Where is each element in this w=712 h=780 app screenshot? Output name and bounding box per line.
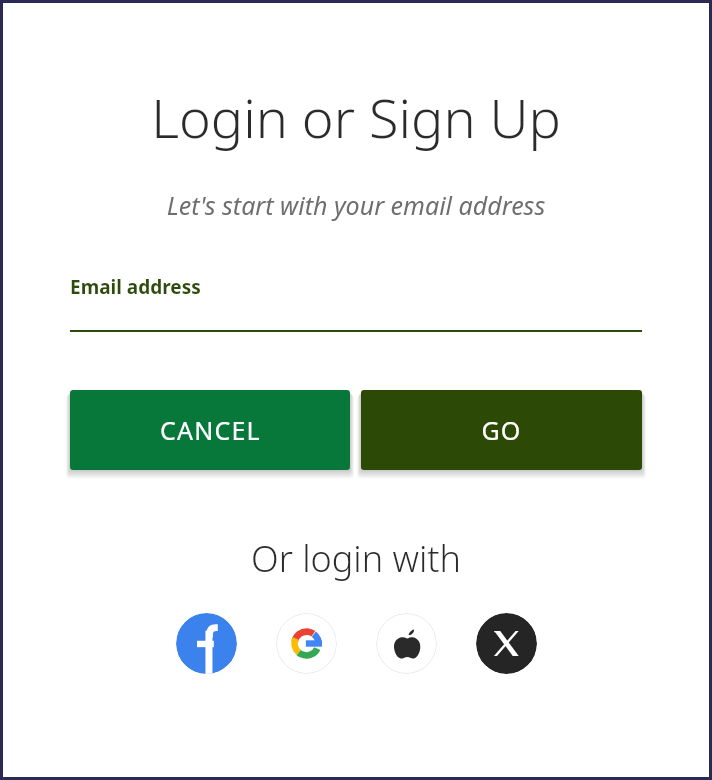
staticText: Let's start with your email address (0, 188, 712, 222)
button[interactable]: Sign in with Google (276, 613, 337, 674)
button[interactable]: Sign in with X (476, 613, 537, 674)
button[interactable]: CANCEL (70, 390, 350, 470)
staticText: GO (481, 413, 522, 447)
button[interactable]: GO (361, 390, 642, 470)
staticText: Email address (70, 274, 201, 300)
button[interactable]: Sign in with Facebook (176, 613, 237, 674)
button[interactable]: Sign in with Apple (376, 613, 437, 674)
staticText: CANCEL (160, 413, 261, 447)
staticText: Or login with (0, 534, 712, 583)
staticText: Login or Sign Up (0, 80, 712, 154)
